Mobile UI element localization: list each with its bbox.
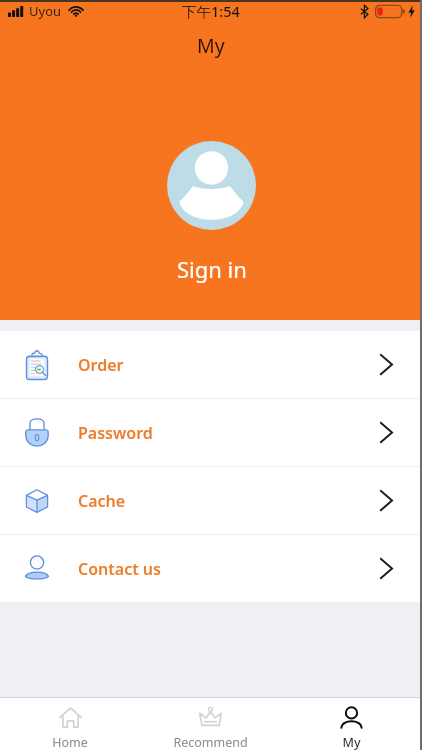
button[interactable]: Order [0,331,422,398]
button[interactable]: Password [0,399,422,466]
staticText: 下午1:54 [182,1,240,21]
button[interactable]: Home [0,698,140,750]
staticText: Order [78,354,124,376]
button[interactable]: My [281,698,422,750]
button[interactable]: Profile photo [167,141,256,284]
staticText: Uyou [29,2,62,20]
staticText: Home [52,734,88,750]
staticText: My [197,32,225,59]
button[interactable]: Contact us [0,535,422,602]
staticText: My [342,734,361,750]
button[interactable]: Recommend [140,698,281,750]
button[interactable]: Cache [0,467,422,534]
other: Profile photo [167,141,256,230]
staticText: Recommend [173,734,248,750]
staticText: Cache [78,490,126,512]
staticText: Password [78,422,153,444]
staticText: Contact us [78,558,161,580]
staticText: Sign in [177,254,247,284]
